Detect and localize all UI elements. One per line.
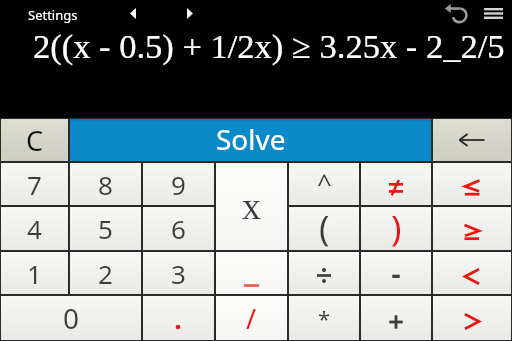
- staticText: ): [391, 204, 402, 247]
- staticText: 5: [98, 211, 113, 246]
- button[interactable]: (: [289, 207, 359, 250]
- button[interactable]: *: [289, 296, 359, 340]
- staticText: 1: [27, 256, 42, 291]
- button[interactable]: [433, 119, 511, 161]
- button[interactable]: /: [216, 296, 287, 340]
- button[interactable]: 8: [70, 163, 141, 205]
- staticText: 9: [171, 167, 186, 202]
- button[interactable]: [478, 0, 508, 27]
- button[interactable]: [143, 296, 214, 340]
- staticText: C: [26, 122, 44, 159]
- button[interactable]: [361, 296, 431, 340]
- button[interactable]: [433, 163, 511, 205]
- staticText: 2((x - 0.5) + 1/2x) ≥ 3.25x - 2_2/5: [33, 27, 505, 65]
- button[interactable]: [433, 252, 511, 294]
- button[interactable]: 9: [143, 163, 214, 205]
- button[interactable]: 1: [1, 252, 68, 294]
- button[interactable]: [216, 252, 287, 294]
- staticText: *: [318, 303, 331, 333]
- staticText: 8: [98, 167, 113, 202]
- staticText: 0: [63, 299, 80, 337]
- button[interactable]: 6: [143, 207, 214, 250]
- button[interactable]: [118, 0, 148, 27]
- button[interactable]: ^: [289, 163, 359, 205]
- button[interactable]: 2: [70, 252, 141, 294]
- button[interactable]: [361, 163, 431, 205]
- button[interactable]: 5: [70, 207, 141, 250]
- staticText: 2: [98, 256, 113, 291]
- button[interactable]: [289, 252, 359, 294]
- staticText: 4: [27, 211, 42, 246]
- staticText: 6: [171, 211, 186, 246]
- button[interactable]: C: [1, 119, 68, 161]
- button[interactable]: [433, 296, 511, 340]
- staticText: Solve: [216, 120, 286, 158]
- button[interactable]: 3: [143, 252, 214, 294]
- button[interactable]: [361, 252, 431, 294]
- button[interactable]: [433, 207, 511, 250]
- staticText: /: [246, 300, 257, 337]
- button[interactable]: [440, 1, 474, 28]
- button[interactable]: [175, 0, 205, 27]
- staticText: 7: [27, 167, 42, 202]
- button[interactable]: Solve: [70, 119, 431, 161]
- staticText: x: [242, 185, 261, 227]
- button[interactable]: Settings: [20, 2, 86, 28]
- button[interactable]: ): [361, 207, 431, 250]
- button[interactable]: 4: [1, 207, 68, 250]
- button[interactable]: x: [216, 163, 287, 250]
- button[interactable]: 0: [1, 296, 141, 340]
- staticText: (: [319, 204, 330, 247]
- staticText: Settings: [28, 6, 78, 24]
- staticText: 3: [171, 256, 186, 291]
- staticText: ^: [317, 165, 332, 200]
- button[interactable]: 7: [1, 163, 68, 205]
